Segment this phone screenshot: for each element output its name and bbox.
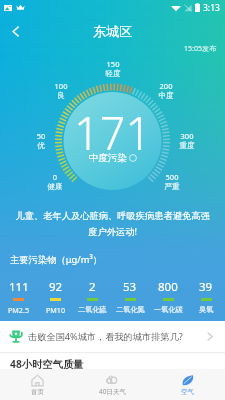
- staticText: 500: [152, 172, 192, 182]
- staticText: 171: [74, 102, 152, 163]
- staticText: 儿童、老年人及心脏病、呼吸疾病患者避免高强度户外运动!: [13, 210, 212, 238]
- staticText: 严重: [152, 182, 192, 191]
- staticText: 48小时空气质量: [10, 357, 84, 369]
- staticText: 92: [49, 279, 63, 295]
- staticText: 39: [199, 279, 213, 295]
- staticText: 中度污染: [89, 152, 127, 164]
- staticText: 800: [158, 279, 178, 295]
- staticText: 东城区: [93, 23, 132, 39]
- staticText: 重度: [167, 141, 207, 150]
- staticText: 3:13: [203, 2, 220, 14]
- staticText: 111: [9, 279, 29, 295]
- staticText: 2: [89, 279, 96, 295]
- staticText: 中度: [146, 91, 186, 100]
- staticText: 53: [123, 279, 137, 295]
- staticText: 二氧化氮: [116, 305, 145, 314]
- staticText: 200: [146, 81, 186, 91]
- staticText: 40日天气: [99, 387, 126, 396]
- button[interactable]: Back: [0, 16, 30, 46]
- staticText: PM10: [46, 305, 66, 315]
- button[interactable]: 击败全国4%城市，看我的城市排第几?: [0, 321, 225, 352]
- staticText: PM2.5: [8, 305, 30, 315]
- staticText: 良: [41, 91, 81, 100]
- staticText: 空气: [181, 388, 194, 396]
- staticText: 50: [21, 131, 61, 141]
- staticText: 轻度: [93, 69, 133, 78]
- staticText: 300: [167, 131, 207, 141]
- button[interactable]: 首页: [0, 369, 75, 400]
- button[interactable]: 空气: [150, 369, 225, 400]
- staticText: 150: [93, 59, 133, 69]
- staticText: 优: [21, 141, 61, 150]
- staticText: 主要污染物（μg/m³）: [10, 253, 103, 266]
- staticText: 首页: [31, 388, 44, 396]
- staticText: 健康: [35, 182, 75, 191]
- staticText: 臭氧: [199, 305, 214, 314]
- button[interactable]: 40日天气: [75, 369, 150, 400]
- staticText: 15:05发布: [184, 44, 216, 54]
- staticText: 0: [35, 172, 75, 182]
- staticText: 100: [41, 81, 81, 91]
- staticText: 二氧化硫: [78, 305, 107, 314]
- staticText: 一氧化碳: [154, 305, 183, 314]
- staticText: 击败全国4%城市，看我的城市排第几?: [28, 330, 183, 343]
